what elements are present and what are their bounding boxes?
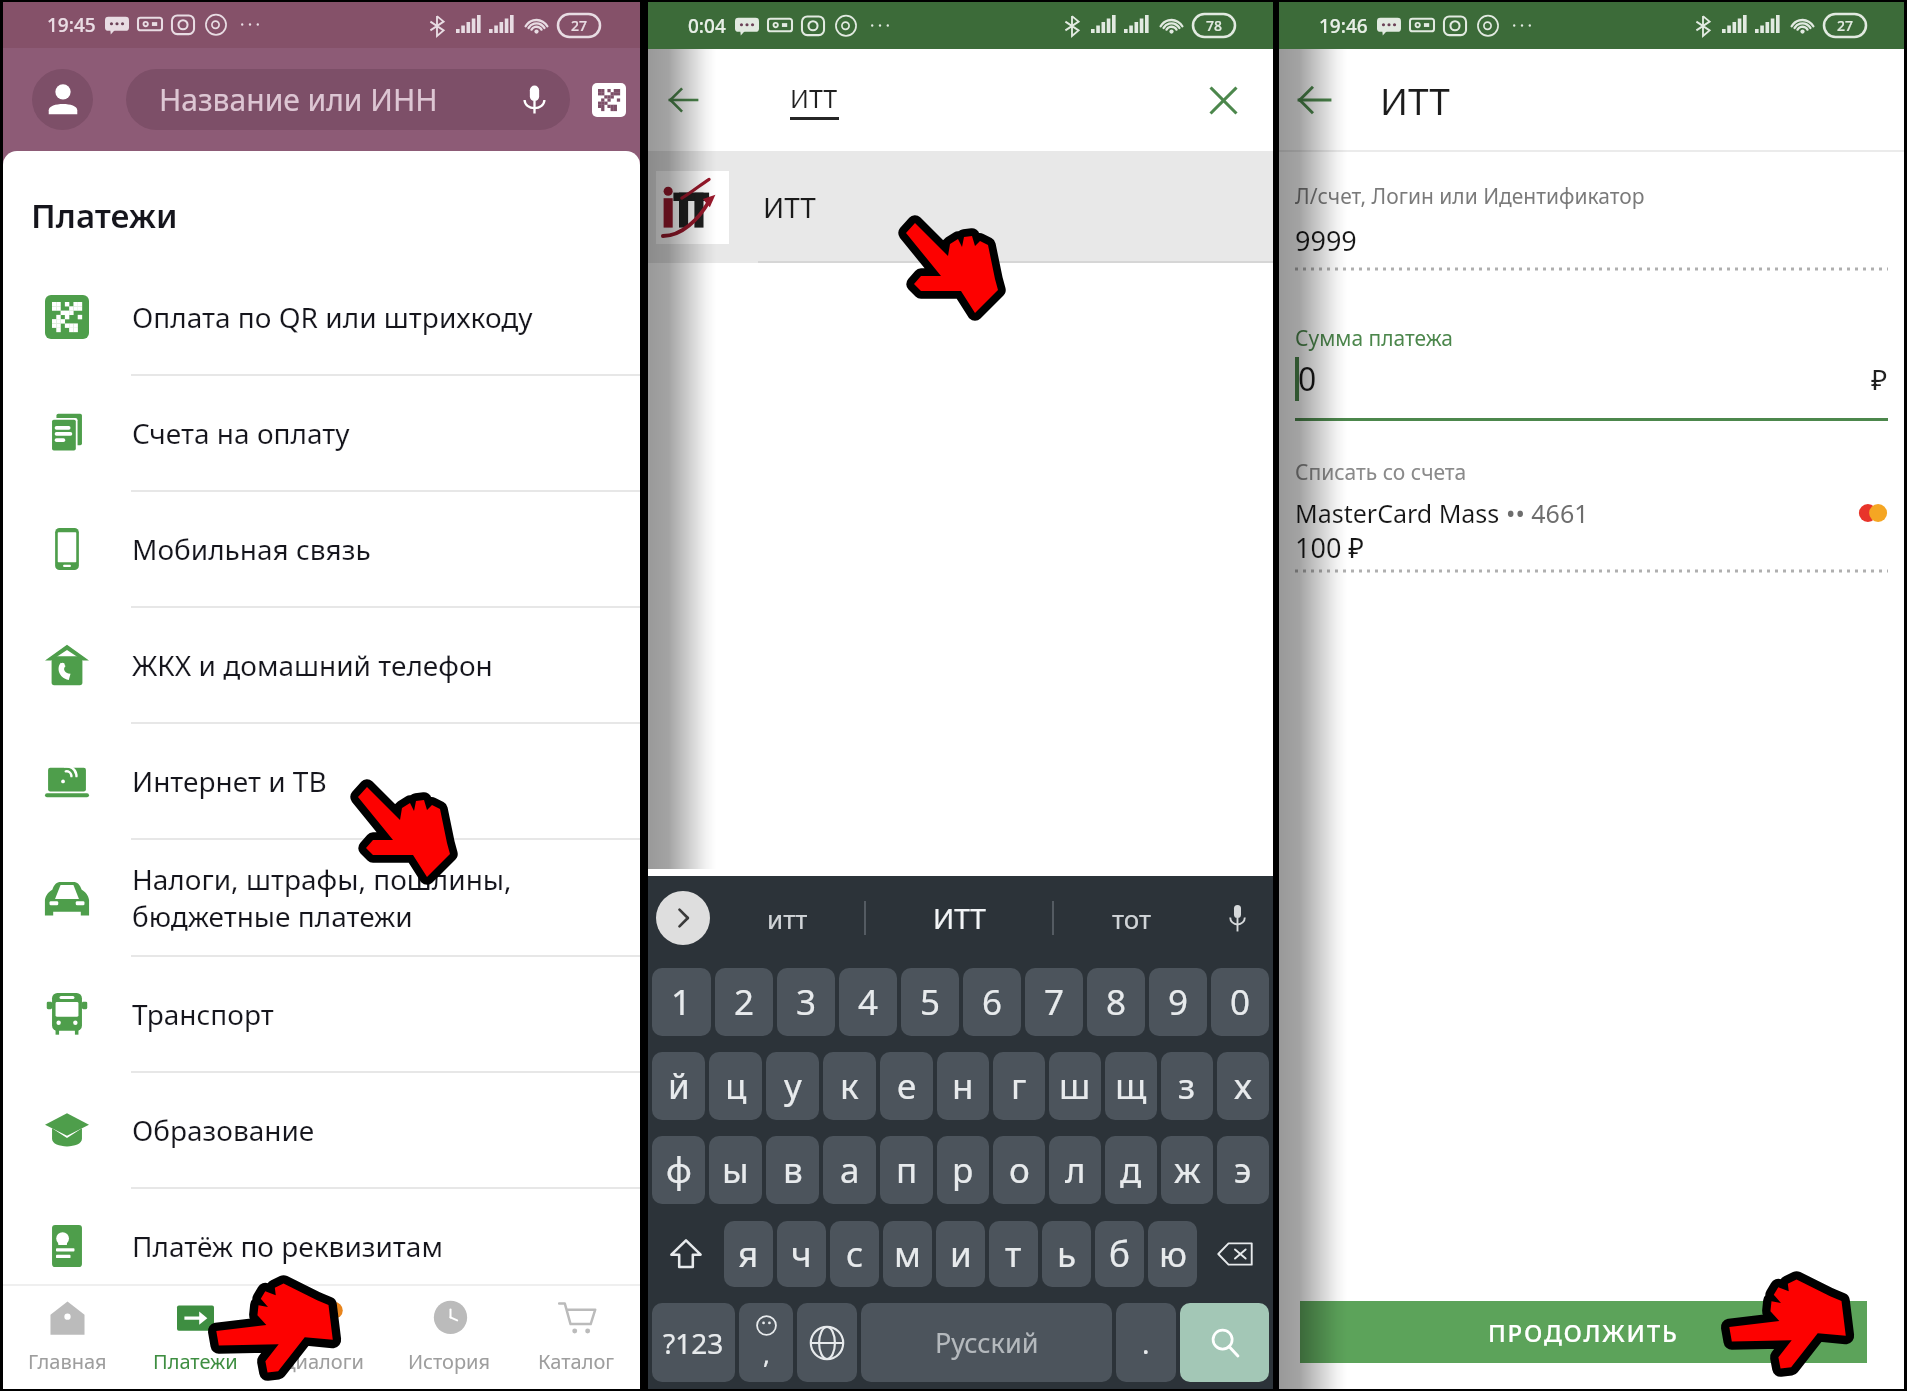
button[interactable]: л — [1049, 1136, 1101, 1204]
button[interactable]: е — [880, 1052, 933, 1120]
staticText: л — [1065, 1146, 1086, 1194]
button[interactable]: тот — [1054, 876, 1209, 960]
button[interactable]: д — [1105, 1136, 1157, 1204]
button[interactable]: 5 — [901, 968, 959, 1036]
button[interactable]: Название или ИНН — [126, 69, 570, 130]
button[interactable]: More suggestions — [656, 891, 710, 945]
button[interactable]: Scan QR code — [586, 77, 632, 123]
button[interactable]: г — [993, 1052, 1045, 1120]
button[interactable]: ЖКХ и домашний телефон — [3, 608, 640, 722]
button[interactable]: к — [823, 1052, 876, 1120]
button[interactable]: 1 — [652, 968, 711, 1036]
staticText: 100 ₽ — [1295, 529, 1365, 566]
button[interactable]: Emoji — [739, 1303, 793, 1382]
staticText: ЖКХ и домашний телефон — [132, 646, 493, 684]
button[interactable]: ы — [709, 1136, 762, 1204]
button[interactable]: Мобильная связь — [3, 492, 640, 606]
staticText: а — [840, 1146, 860, 1194]
button[interactable]: Налоги, штрафы, пошлины, бюджетные плате… — [3, 840, 640, 955]
button[interactable]: История — [386, 1286, 513, 1383]
button[interactable]: ИТТ — [866, 876, 1052, 960]
button[interactable]: Счета на оплату — [3, 376, 640, 490]
staticText: 8 — [1106, 978, 1127, 1026]
button[interactable]: ю — [1148, 1221, 1197, 1287]
button[interactable]: ?123 — [652, 1303, 735, 1382]
button[interactable]: 6 — [963, 968, 1021, 1036]
button[interactable]: э — [1217, 1136, 1269, 1204]
staticText: 0 — [1298, 357, 1317, 401]
button[interactable]: 9 — [1149, 968, 1207, 1036]
staticText: я — [738, 1230, 759, 1278]
button[interactable]: Платежи — [131, 1286, 259, 1383]
button[interactable]: з — [1161, 1052, 1213, 1120]
button[interactable]: о — [993, 1136, 1045, 1204]
button[interactable]: й — [652, 1052, 705, 1120]
button[interactable]: н — [937, 1052, 989, 1120]
staticText: •• 4661 — [1506, 496, 1589, 530]
button[interactable]: Backspace — [1202, 1221, 1268, 1287]
button[interactable]: Каталог — [513, 1286, 640, 1383]
button[interactable]: 3 — [777, 968, 835, 1036]
button[interactable]: Shift — [653, 1221, 719, 1287]
button[interactable]: 8 — [1087, 968, 1145, 1036]
button[interactable]: Русский — [861, 1303, 1112, 1382]
staticText: ИТТ — [763, 188, 816, 226]
button[interactable]: Платёж по реквизитам — [3, 1189, 640, 1303]
button[interactable]: Clear search — [1198, 75, 1248, 125]
staticText: у — [784, 1062, 802, 1110]
button[interactable]: Главная — [3, 1286, 131, 1383]
staticText: ?123 — [663, 1324, 724, 1362]
button[interactable]: Диалоги — [259, 1286, 386, 1383]
staticText: с — [846, 1230, 864, 1278]
staticText: ы — [722, 1146, 749, 1194]
button[interactable]: ц — [709, 1052, 762, 1120]
button[interactable]: я — [724, 1221, 773, 1287]
staticText: 2 — [734, 978, 755, 1026]
button[interactable]: ч — [777, 1221, 826, 1287]
button[interactable]: Интернет и ТВ — [3, 724, 640, 838]
button[interactable]: б — [1095, 1221, 1144, 1287]
staticText: м — [894, 1230, 921, 1278]
button[interactable]: . — [1116, 1303, 1176, 1382]
button[interactable]: 7 — [1025, 968, 1083, 1036]
staticText: История — [408, 1348, 491, 1375]
staticText: ПРОДОЛЖИТЬ — [1488, 1316, 1679, 1349]
staticText: 5 — [920, 978, 941, 1026]
button[interactable]: Back — [657, 74, 709, 126]
button[interactable]: ж — [1161, 1136, 1213, 1204]
button[interactable]: Voice input — [1209, 876, 1265, 960]
button[interactable]: щ — [1105, 1052, 1157, 1120]
button[interactable]: Back — [1288, 74, 1340, 126]
button[interactable]: ИТТ — [648, 151, 1273, 263]
button[interactable]: ш — [1049, 1052, 1101, 1120]
button[interactable]: 2 — [715, 968, 773, 1036]
button[interactable]: м — [883, 1221, 932, 1287]
button[interactable]: ь — [1042, 1221, 1091, 1287]
staticText: Платежи — [31, 193, 178, 238]
staticText: Название или ИНН — [159, 79, 438, 120]
button[interactable]: Profile — [32, 69, 93, 130]
button[interactable]: а — [823, 1136, 876, 1204]
button[interactable]: с — [830, 1221, 879, 1287]
button[interactable]: в — [766, 1136, 819, 1204]
button[interactable]: у — [766, 1052, 819, 1120]
button[interactable]: ф — [652, 1136, 705, 1204]
button[interactable]: Образование — [3, 1073, 640, 1187]
button[interactable]: ПРОДОЛЖИТЬ — [1300, 1301, 1867, 1363]
button[interactable]: Транспорт — [3, 957, 640, 1071]
button[interactable]: итт — [710, 876, 864, 960]
button[interactable]: 0 — [1211, 968, 1269, 1036]
button[interactable]: и — [936, 1221, 985, 1287]
button[interactable]: х — [1217, 1052, 1269, 1120]
staticText: в — [783, 1146, 803, 1194]
button[interactable]: р — [937, 1136, 989, 1204]
staticText: Диалоги — [281, 1348, 364, 1375]
button[interactable]: т — [989, 1221, 1038, 1287]
button[interactable]: Search — [1180, 1303, 1269, 1382]
button[interactable]: 4 — [839, 968, 897, 1036]
staticText: 19:46 — [1319, 13, 1368, 39]
button[interactable]: п — [880, 1136, 933, 1204]
button[interactable]: Оплата по QR или штрихкоду — [3, 260, 640, 374]
staticText: э — [1234, 1146, 1252, 1194]
button[interactable]: Switch language — [797, 1303, 857, 1382]
